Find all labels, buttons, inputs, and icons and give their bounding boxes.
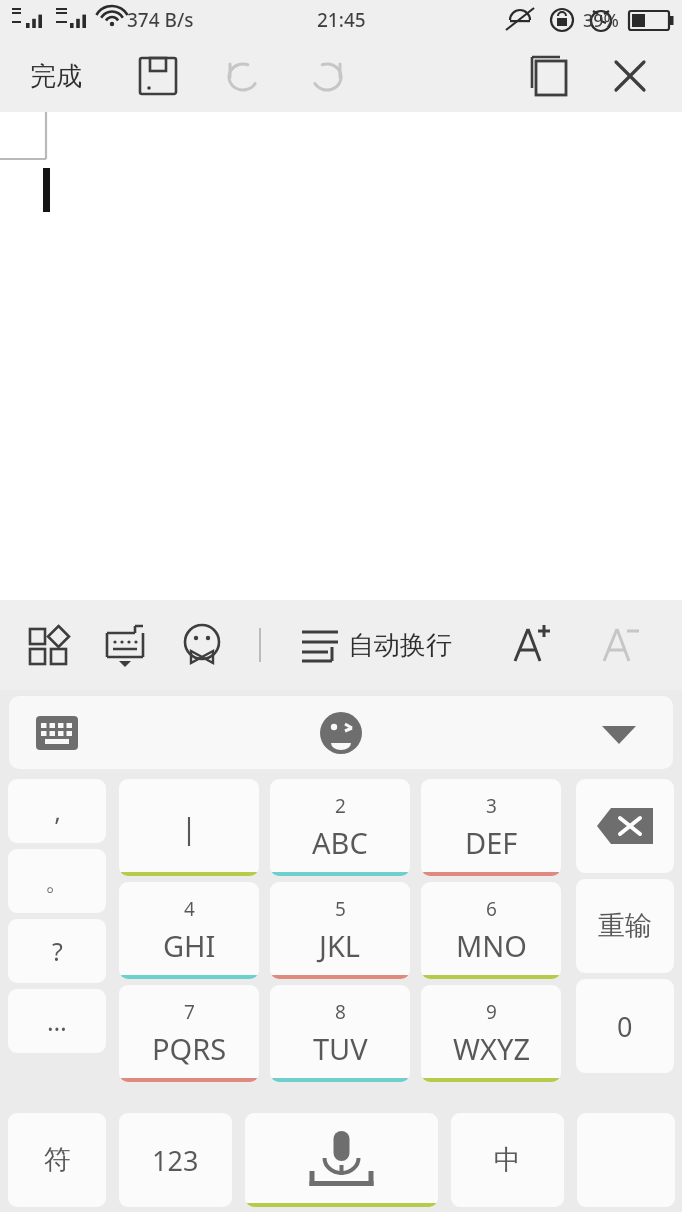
button[interactable]: Delete	[576, 779, 674, 873]
button[interactable]: 6	[421, 882, 561, 979]
staticText: ,	[54, 794, 61, 828]
button[interactable]: 自动换行	[292, 617, 458, 673]
staticText: 0	[617, 1008, 633, 1045]
button[interactable]: Collapse	[593, 707, 645, 759]
button[interactable]: Emoji	[176, 619, 228, 671]
button[interactable]: 。	[8, 849, 106, 913]
staticText: 。	[45, 866, 70, 897]
staticText: 2	[335, 793, 346, 819]
button[interactable]: Undo	[218, 50, 270, 102]
staticText: 8	[335, 999, 346, 1025]
button[interactable]: ?	[8, 919, 106, 983]
staticText: TUV	[313, 1029, 368, 1068]
staticText: 39%	[583, 8, 619, 33]
button[interactable]: Emoji	[313, 705, 369, 761]
staticText: PQRS	[152, 1029, 227, 1068]
staticText: 自动换行	[348, 629, 452, 662]
staticText: ABC	[312, 823, 368, 862]
staticText: 374 B/s	[127, 7, 194, 33]
staticText: 123	[152, 1142, 199, 1179]
button[interactable]: Redo	[300, 50, 352, 102]
button[interactable]: 8	[270, 985, 410, 1082]
button[interactable]: Voice input	[245, 1113, 438, 1207]
staticText: ?	[52, 934, 63, 968]
button[interactable]: Keyboard	[31, 707, 83, 759]
button[interactable]: Save	[132, 50, 184, 102]
staticText: 重输	[598, 909, 652, 943]
button[interactable]: 中	[451, 1113, 564, 1207]
button[interactable]: …	[8, 989, 106, 1053]
button[interactable]: 5	[270, 882, 410, 979]
button[interactable]: Close	[604, 50, 656, 102]
staticText: 4	[184, 896, 195, 922]
staticText: 5	[335, 896, 346, 922]
button[interactable]: 重输	[576, 879, 674, 973]
staticText: 符	[44, 1143, 71, 1177]
button[interactable]: Pages	[522, 50, 574, 102]
button[interactable]: 4	[119, 882, 259, 979]
button[interactable]: 符	[8, 1113, 106, 1207]
button[interactable]: 完成	[18, 52, 94, 101]
staticText: 7	[184, 999, 195, 1025]
staticText: 6	[486, 896, 497, 922]
button[interactable]: ,	[8, 779, 106, 843]
button[interactable]: Handwriting	[99, 619, 151, 671]
button[interactable]: 0	[576, 979, 674, 1073]
staticText: JKL	[319, 926, 361, 965]
staticText: MNO	[456, 926, 527, 965]
staticText: GHI	[163, 926, 216, 965]
staticText: |	[181, 808, 197, 847]
button[interactable]: 123	[119, 1113, 232, 1207]
button[interactable]: 2	[270, 779, 410, 876]
staticText: WXYZ	[453, 1029, 530, 1068]
button[interactable]: |	[119, 779, 259, 876]
button[interactable]: Increase font	[505, 619, 557, 671]
staticText: 21:45	[317, 7, 366, 33]
staticText: 9	[486, 999, 497, 1025]
button[interactable]: Decrease font	[594, 619, 646, 671]
button[interactable]: 3	[421, 779, 561, 876]
button[interactable]: 9	[421, 985, 561, 1082]
staticText: 3	[486, 793, 497, 819]
button[interactable]: 7	[119, 985, 259, 1082]
staticText: DEF	[465, 823, 518, 862]
button[interactable]: Panel	[22, 619, 74, 671]
staticText: 中	[494, 1143, 521, 1177]
staticText: 完成	[30, 60, 82, 93]
staticText: …	[47, 1004, 67, 1038]
